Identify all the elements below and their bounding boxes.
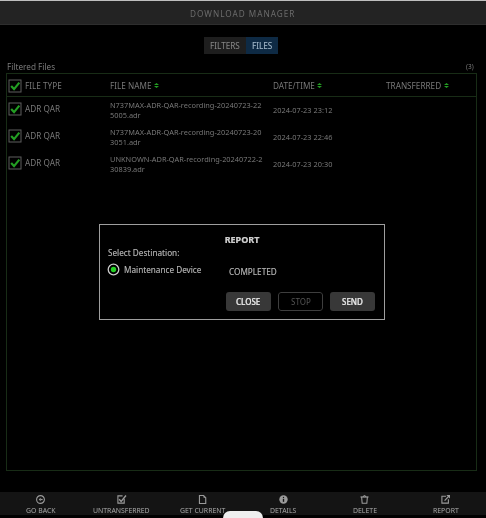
button[interactable]: ADR QAR xyxy=(6,151,477,178)
staticText: N737MAX-ADR-QAR-recording-20240723-20 xyxy=(110,127,262,137)
staticText: ADR QAR xyxy=(25,103,60,114)
staticText: TRANSFERRED xyxy=(386,80,442,91)
button[interactable]: FILE NAME xyxy=(110,80,159,91)
staticText: DELETE xyxy=(353,506,377,515)
staticText: 5005.adr xyxy=(110,110,141,120)
staticText: DETAILS xyxy=(270,506,297,515)
button[interactable]: DELETE xyxy=(324,492,405,515)
staticText: 2024-07-23 22:46 xyxy=(273,132,333,142)
staticText: 2024-07-23 20:30 xyxy=(273,159,333,169)
staticText: REPORT xyxy=(99,233,385,245)
staticText: 30839.adr xyxy=(110,164,145,174)
staticText: FILES xyxy=(252,40,273,51)
staticText: COMPLETED xyxy=(229,266,277,277)
staticText: (3) xyxy=(466,62,474,71)
button[interactable]: DATE/TIME xyxy=(273,80,322,91)
staticText: ADR QAR xyxy=(25,157,60,168)
staticText: ADR QAR xyxy=(25,130,60,141)
staticText: DOWNLOAD MANAGER xyxy=(190,8,296,19)
staticText: GET CURRENT xyxy=(180,506,226,515)
staticText: REPORT xyxy=(433,506,459,515)
staticText: Filtered Files xyxy=(7,61,56,72)
button[interactable]: GET CURRENT xyxy=(162,492,243,515)
staticText: N737MAX-ADR-QAR-recording-20240723-22 xyxy=(110,100,262,110)
button[interactable]: CLOSE xyxy=(226,292,271,311)
staticText: CLOSE xyxy=(236,296,261,307)
staticText: GO BACK xyxy=(26,506,56,515)
button[interactable]: STOP xyxy=(278,292,323,311)
staticText: 3051.adr xyxy=(110,137,141,147)
button[interactable]: Maintenance Device xyxy=(107,263,202,276)
staticText: Maintenance Device xyxy=(124,264,202,275)
button[interactable]: GO BACK xyxy=(0,492,81,515)
staticText: 2024-07-23 23:12 xyxy=(273,105,333,115)
button[interactable]: ADR QAR xyxy=(6,124,477,151)
staticText: Select Destination: xyxy=(108,247,180,258)
staticText: STOP xyxy=(291,296,311,307)
staticText: FILE NAME xyxy=(110,80,152,91)
button[interactable]: FILES xyxy=(246,37,278,54)
button[interactable]: TRANSFERRED xyxy=(386,80,449,91)
button[interactable]: REPORT xyxy=(405,492,486,515)
staticText: UNKNOWN-ADR-QAR-recording-20240722-2 xyxy=(110,154,263,164)
button[interactable]: FILTERS xyxy=(204,37,246,54)
staticText: FILE TYPE xyxy=(25,80,62,91)
staticText: SEND xyxy=(342,296,363,307)
button[interactable]: SEND xyxy=(330,292,375,311)
staticText: DATE/TIME xyxy=(273,80,315,91)
staticText: FILTERS xyxy=(210,40,240,51)
staticText: UNTRANSFERRED xyxy=(93,506,150,515)
button[interactable]: UNTRANSFERRED xyxy=(81,492,162,515)
button[interactable]: ADR QAR xyxy=(6,97,477,124)
button[interactable]: DETAILS xyxy=(243,492,324,515)
